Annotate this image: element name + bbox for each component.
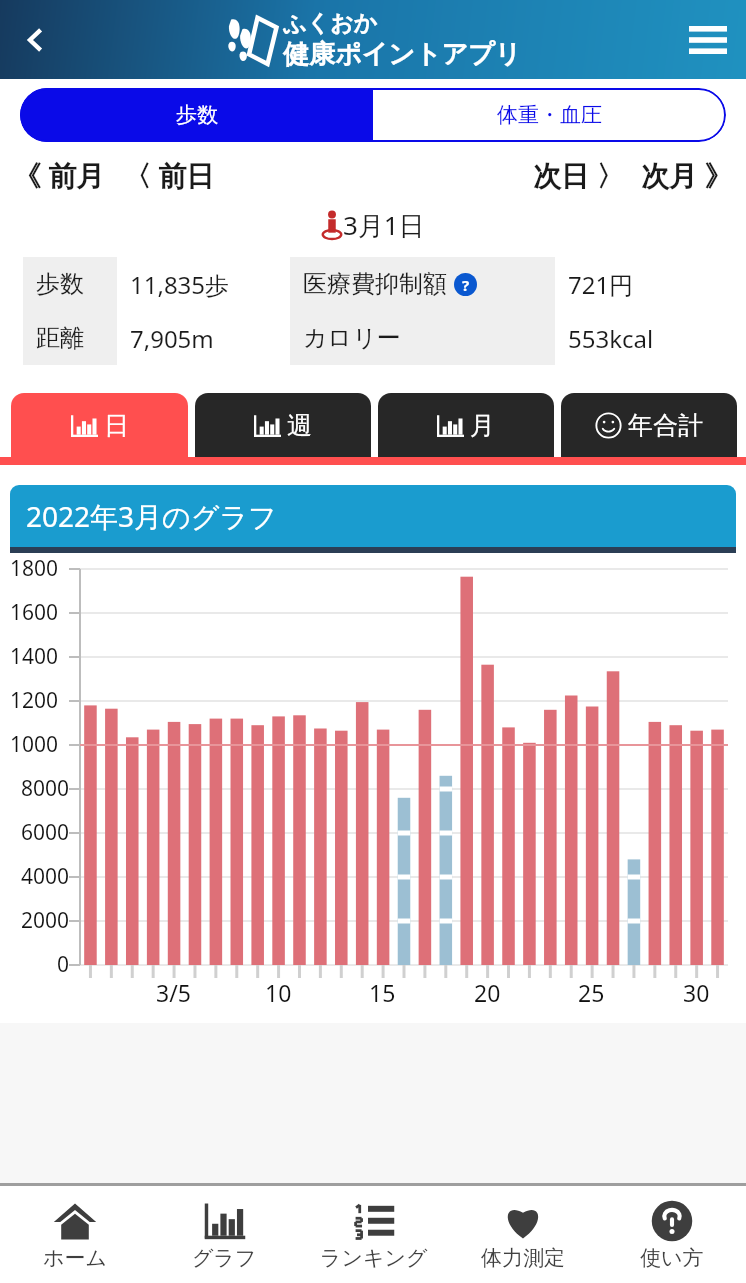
staticText: 25 bbox=[578, 977, 605, 1008]
button[interactable]: 〈 前日 bbox=[120, 151, 218, 199]
button[interactable]: 体重・血圧 bbox=[373, 88, 726, 142]
staticText: 15 bbox=[369, 977, 396, 1008]
staticText: 医療費抑制額 bbox=[303, 269, 447, 299]
staticText: 次日 〉 bbox=[533, 156, 625, 194]
staticText: ? bbox=[462, 275, 470, 295]
staticText: 年合計 bbox=[628, 410, 703, 441]
staticText: カロリー bbox=[303, 323, 401, 353]
staticText: 10 bbox=[265, 977, 292, 1008]
staticText: 〈 前日 bbox=[123, 156, 215, 194]
button[interactable]: 次月 》 bbox=[638, 151, 736, 199]
button[interactable]: 月 bbox=[378, 393, 554, 457]
staticText: 週 bbox=[287, 410, 312, 441]
staticText: 7,905m bbox=[130, 322, 214, 355]
button[interactable]: Back bbox=[6, 11, 64, 69]
staticText: 18000 bbox=[10, 554, 70, 583]
staticText: 16000 bbox=[10, 598, 70, 627]
staticText: 距離 bbox=[36, 323, 84, 353]
staticText: ランキング bbox=[320, 1245, 428, 1271]
button[interactable]: 年合計 bbox=[561, 393, 737, 457]
staticText: ホーム bbox=[43, 1245, 107, 1271]
staticText: 3月1日 bbox=[343, 207, 425, 243]
staticText: 20 bbox=[474, 977, 501, 1008]
staticText: ふくおか bbox=[283, 9, 378, 38]
staticText: 0 bbox=[57, 950, 70, 979]
button[interactable]: ランキング bbox=[299, 1186, 448, 1283]
staticText: 12000 bbox=[10, 686, 70, 715]
staticText: 健康ポイントアプリ bbox=[283, 38, 522, 71]
staticText: 日 bbox=[104, 410, 129, 441]
button[interactable]: 次日 〉 bbox=[530, 151, 628, 199]
staticText: 8000 bbox=[21, 774, 70, 803]
button[interactable]: Menu bbox=[678, 10, 738, 70]
staticText: 3/5 bbox=[156, 977, 191, 1008]
button[interactable]: 使い方 bbox=[597, 1186, 746, 1283]
staticText: 721円 bbox=[568, 268, 634, 301]
button[interactable]: 週 bbox=[195, 393, 371, 457]
staticText: グラフ bbox=[192, 1245, 257, 1271]
staticText: 553kcal bbox=[568, 322, 654, 355]
staticText: 体重・血圧 bbox=[497, 102, 602, 128]
staticText: 次月 》 bbox=[641, 156, 733, 194]
button[interactable]: 《 前月 bbox=[10, 151, 108, 199]
button[interactable]: グラフ bbox=[150, 1186, 299, 1283]
staticText: 6000 bbox=[21, 818, 70, 847]
button[interactable]: 体力測定 bbox=[448, 1186, 597, 1283]
staticText: 30 bbox=[683, 977, 710, 1008]
staticText: 歩数 bbox=[176, 102, 218, 128]
staticText: 10000 bbox=[10, 730, 70, 759]
staticText: 4000 bbox=[21, 862, 70, 891]
staticText: 11,835歩 bbox=[130, 268, 230, 301]
staticText: 体力測定 bbox=[481, 1245, 565, 1271]
button[interactable]: 日 bbox=[11, 393, 188, 457]
button[interactable]: 歩数 bbox=[20, 88, 373, 142]
staticText: 2000 bbox=[21, 906, 70, 935]
staticText: 歩数 bbox=[36, 269, 84, 299]
staticText: 月 bbox=[470, 410, 495, 441]
staticText: 14000 bbox=[10, 642, 70, 671]
button[interactable]: Help bbox=[454, 273, 477, 296]
staticText: 2022年3月のグラフ bbox=[26, 497, 277, 535]
staticText: 使い方 bbox=[640, 1245, 704, 1271]
staticText: 《 前月 bbox=[13, 156, 105, 194]
button[interactable]: ホーム bbox=[0, 1186, 150, 1283]
